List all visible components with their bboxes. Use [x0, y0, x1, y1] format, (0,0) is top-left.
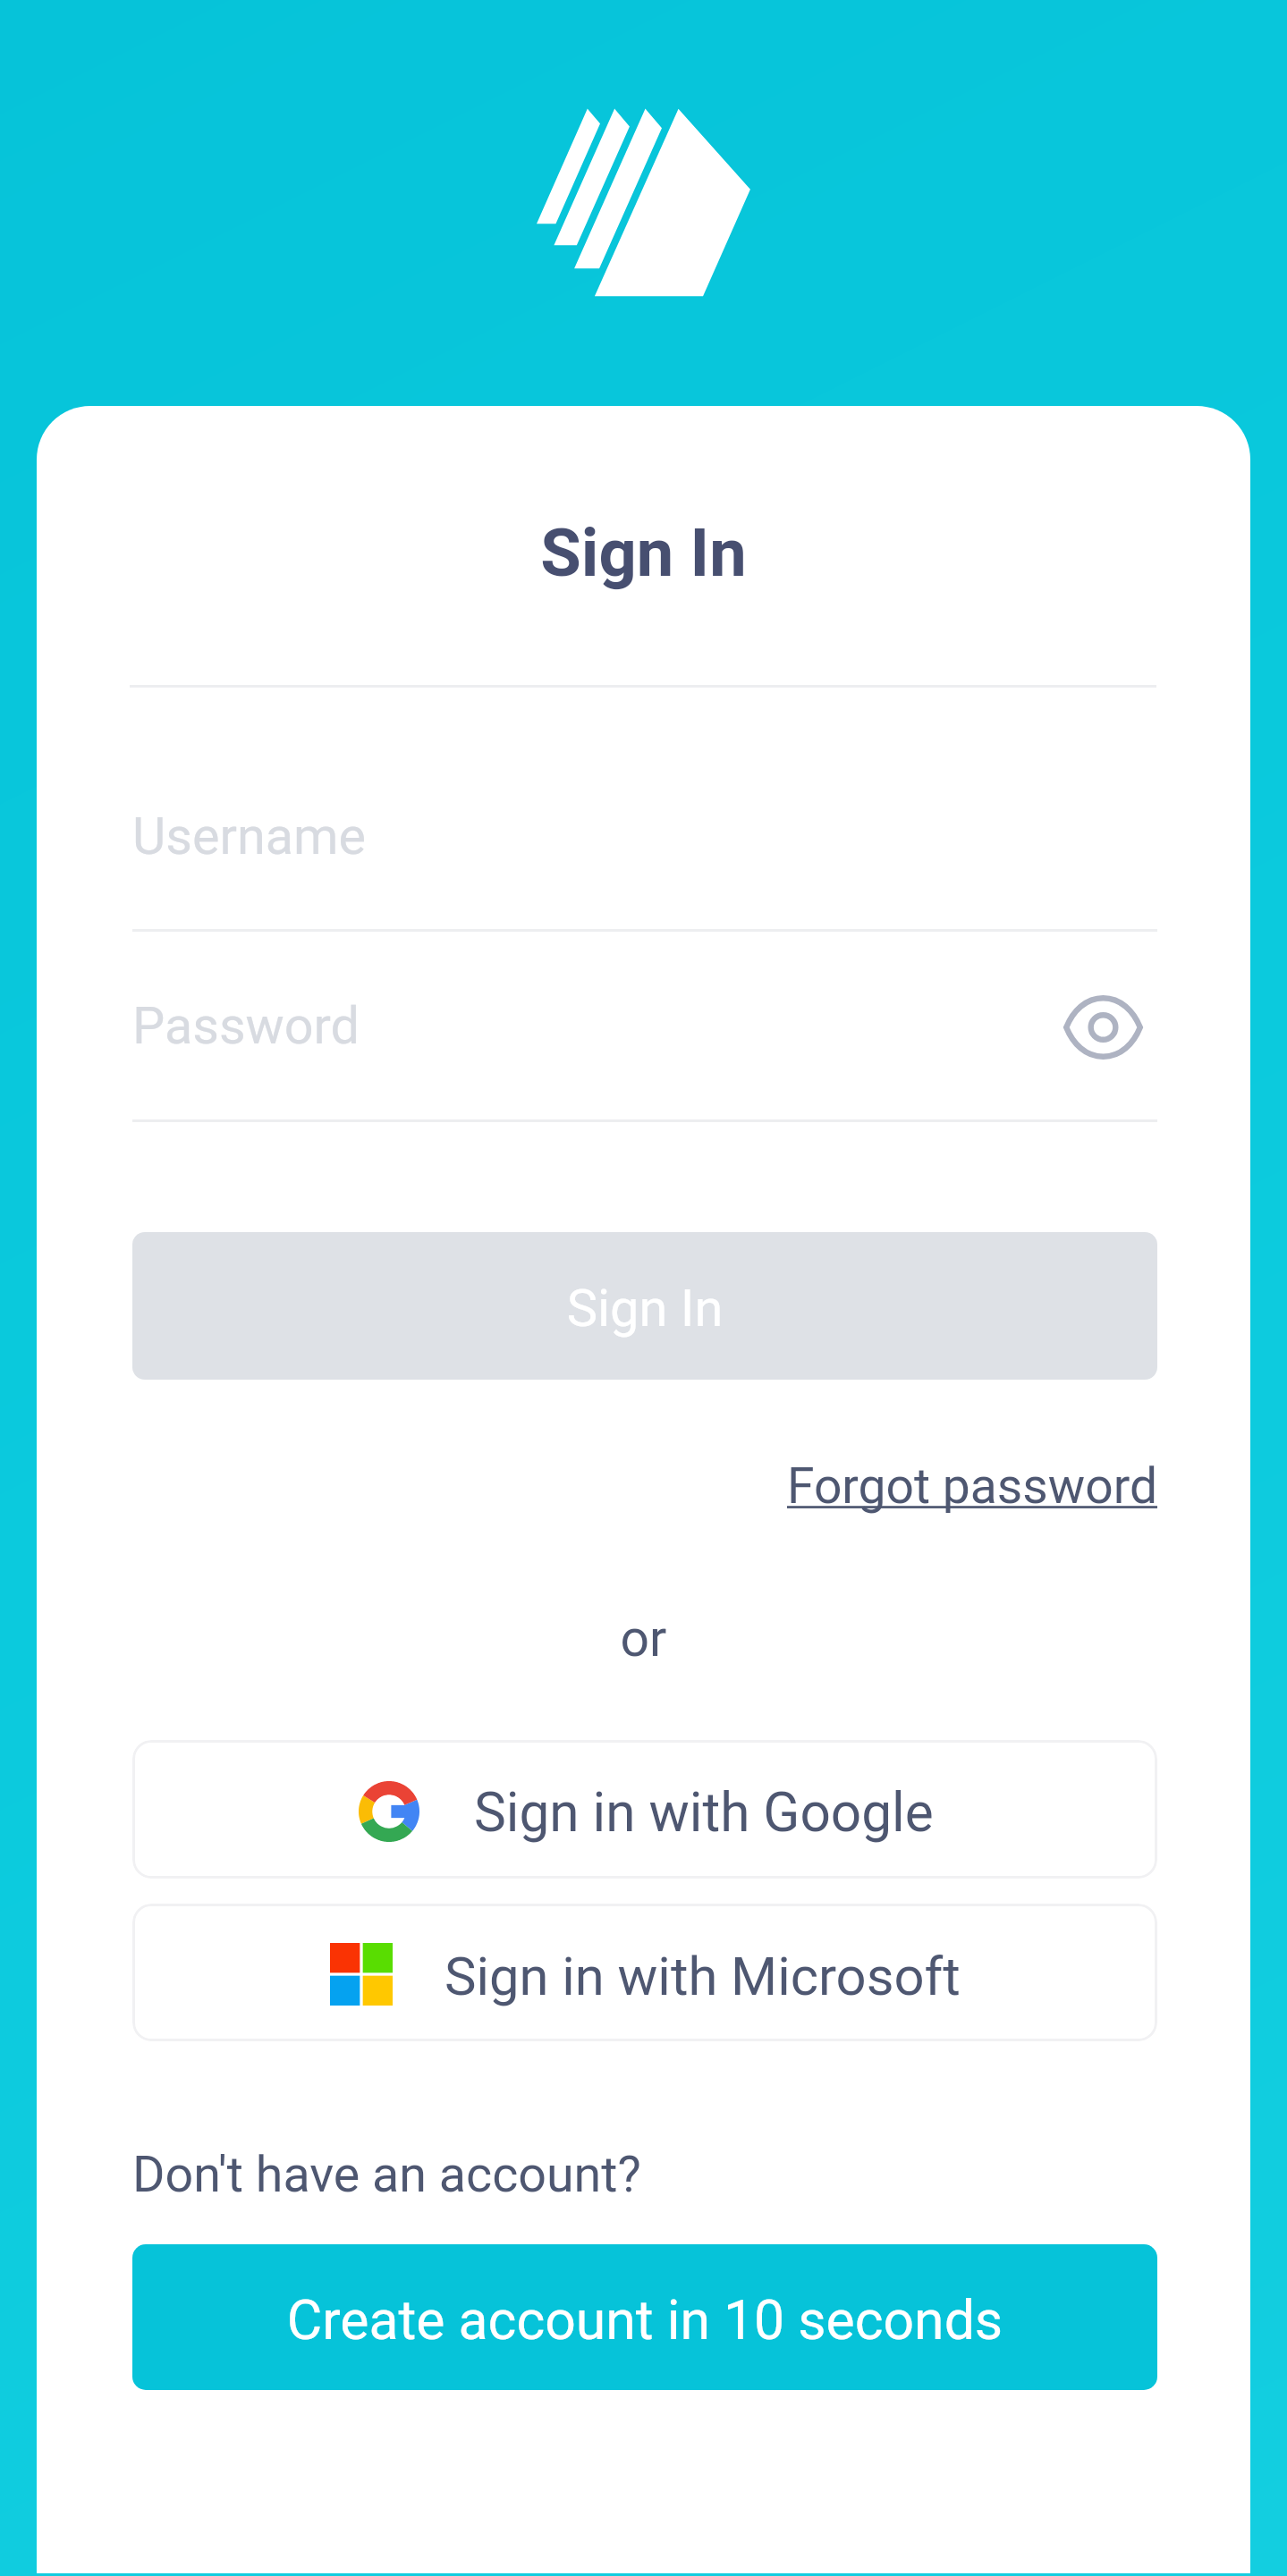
- staticText: Sign In: [132, 1278, 1157, 1339]
- button[interactable]: Show password: [1053, 984, 1153, 1070]
- staticText: Forgot password: [132, 1457, 1157, 1516]
- button[interactable]: Password: [132, 994, 1157, 1122]
- staticText: Sign in with Microsoft: [445, 1946, 961, 2008]
- staticText: Create account in 10 seconds: [132, 2289, 1157, 2352]
- button[interactable]: Sign in with Microsoft: [132, 1904, 1157, 2041]
- button[interactable]: Sign In: [132, 1232, 1157, 1380]
- button[interactable]: Create account in 10 seconds: [132, 2244, 1157, 2390]
- button[interactable]: Username: [132, 805, 1157, 932]
- button[interactable]: Sign in with Google: [132, 1740, 1157, 1879]
- staticText: or: [37, 1609, 1250, 1668]
- staticText: Don't have an account?: [132, 2145, 641, 2203]
- button[interactable]: Forgot password: [132, 1457, 1157, 1516]
- staticText: Username: [132, 807, 366, 866]
- staticText: Password: [132, 996, 360, 1056]
- staticText: Sign In: [37, 514, 1250, 592]
- staticText: Sign in with Google: [474, 1781, 934, 1845]
